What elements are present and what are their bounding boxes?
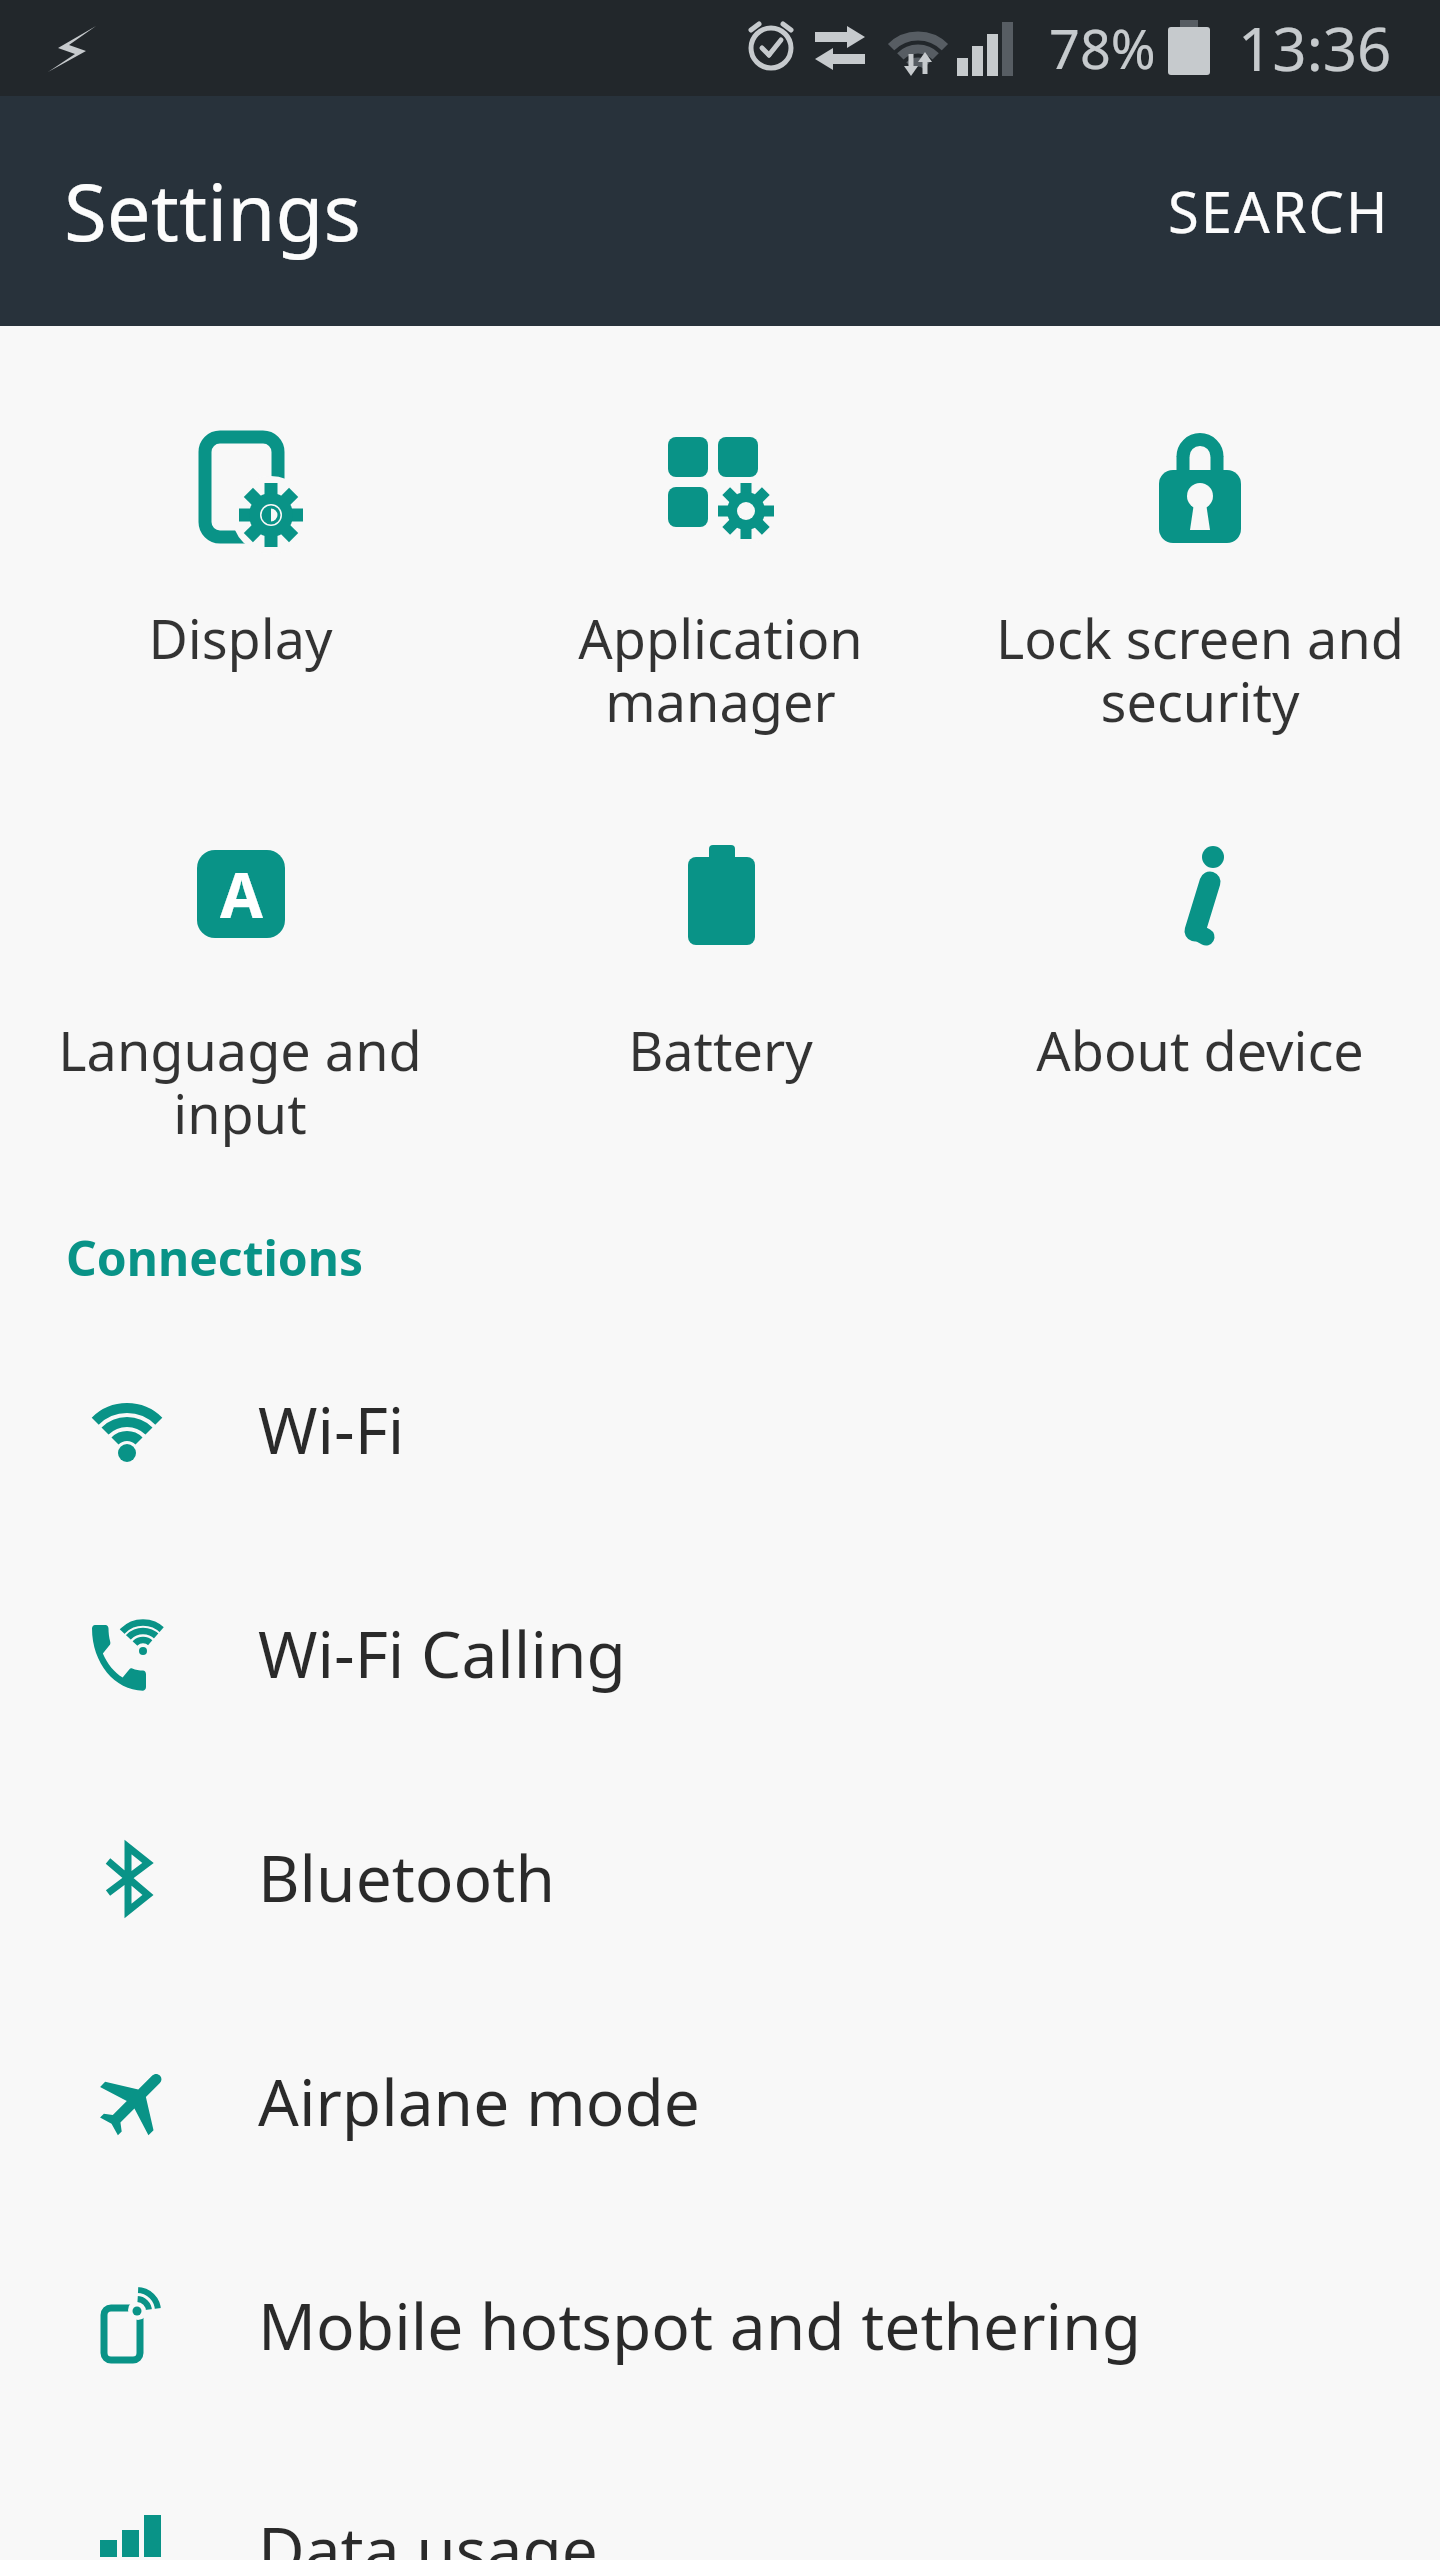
button[interactable]: Data usage (0, 2437, 1440, 2560)
staticText: A (220, 852, 263, 936)
button[interactable]: Battery (480, 845, 960, 1087)
staticText: Settings (64, 158, 361, 264)
button[interactable]: Airplane mode (0, 1989, 1440, 2213)
button[interactable]: About device (960, 845, 1440, 1087)
button[interactable]: Wi-Fi (0, 1317, 1440, 1541)
staticText: 78% (1049, 11, 1156, 85)
staticText: Airplane mode (258, 2058, 700, 2145)
button[interactable]: Application manager (480, 433, 960, 738)
staticText: About device (1036, 1013, 1364, 1087)
staticText: Wi-Fi (258, 1386, 405, 1473)
staticText: Display (148, 601, 333, 675)
button[interactable]: Mobile hotspot and tethering (0, 2213, 1440, 2437)
staticText: Language and input (58, 1013, 422, 1150)
button[interactable]: SEARCH (1168, 173, 1390, 249)
button[interactable]: Display (0, 433, 480, 675)
staticText: Battery (628, 1013, 813, 1087)
staticText: Data usage (258, 2506, 598, 2560)
staticText: SEARCH (1168, 173, 1390, 249)
staticText: Lock screen and security (996, 601, 1404, 738)
staticText: Wi-Fi Calling (258, 1610, 626, 1697)
button[interactable]: Bluetooth (0, 1765, 1440, 1989)
button[interactable]: A (0, 845, 480, 1150)
staticText: Mobile hotspot and tethering (258, 2282, 1142, 2369)
staticText: 13:36 (1238, 7, 1392, 89)
staticText: Connections (66, 1225, 364, 1290)
staticText: Bluetooth (258, 1834, 555, 1921)
button[interactable]: Wi-Fi Calling (0, 1541, 1440, 1765)
button[interactable]: Lock screen and security (960, 433, 1440, 738)
staticText: Application manager (578, 601, 863, 738)
